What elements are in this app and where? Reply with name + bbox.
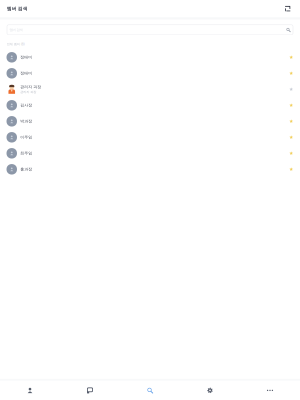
staticText: 전체 멤버 (8) xyxy=(7,42,25,46)
button[interactable]: Search xyxy=(120,381,180,400)
button[interactable]: 이주임 xyxy=(0,129,300,145)
staticText: 김사장 xyxy=(20,103,32,108)
staticText: 정태미 xyxy=(20,71,32,76)
button[interactable]: Contacts xyxy=(0,381,60,400)
staticText: 박과장 xyxy=(20,119,32,124)
staticText: 멤버 검색 xyxy=(10,28,23,32)
button[interactable]: Chats xyxy=(60,381,120,400)
button[interactable]: 관리자 과장 xyxy=(0,81,300,97)
staticText: 멤버 검색 xyxy=(7,6,28,12)
button[interactable]: Transfer xyxy=(282,3,293,14)
staticText: 홍과장 xyxy=(20,167,32,172)
button[interactable]: 정태미 xyxy=(0,49,300,65)
button[interactable]: 홍과장 xyxy=(0,161,300,177)
button[interactable]: Settings xyxy=(180,381,240,400)
button[interactable]: 김사장 xyxy=(0,97,300,113)
button[interactable]: 최주임 xyxy=(0,145,300,161)
staticText: 이주임 xyxy=(20,135,32,140)
staticText: 정태미 xyxy=(20,55,32,60)
button[interactable]: More xyxy=(240,381,300,400)
button[interactable]: 박과장 xyxy=(0,113,300,129)
staticText: 관리자 과장 xyxy=(20,90,36,94)
button[interactable]: 정태미 xyxy=(0,65,300,81)
staticText: 관리자 과장 xyxy=(20,85,41,89)
staticText: 최주임 xyxy=(20,151,32,156)
